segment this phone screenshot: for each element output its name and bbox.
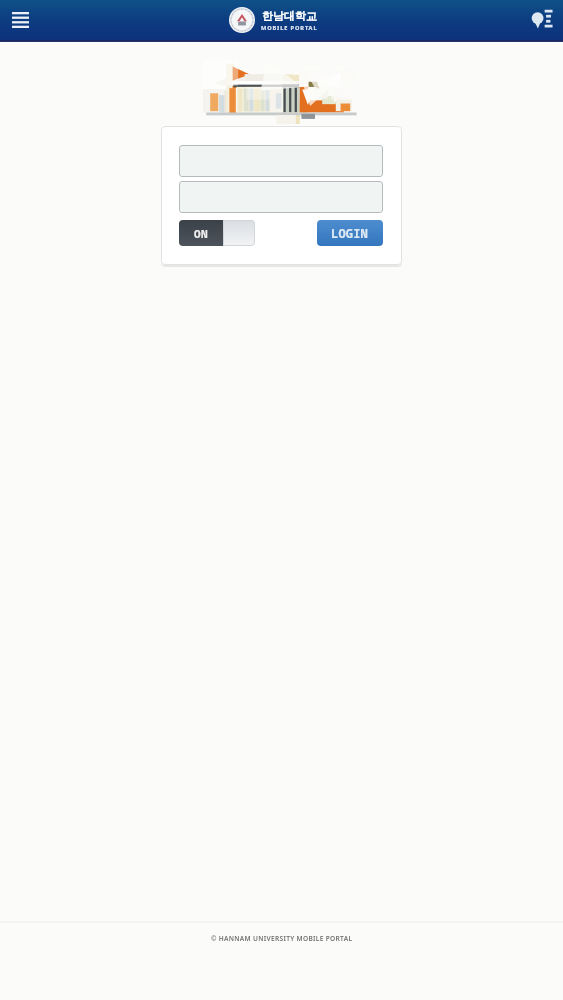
button[interactable]: Text field <box>179 181 383 213</box>
staticText: LOGIN <box>331 225 369 241</box>
staticText: MOBILE PORTAL <box>261 24 318 32</box>
button[interactable]: LOGIN <box>317 220 383 246</box>
button[interactable]: Menu <box>3 3 37 37</box>
button[interactable]: Notices <box>527 4 557 34</box>
staticText: ON <box>194 226 209 241</box>
button[interactable]: Text field <box>179 145 383 177</box>
button[interactable]: ON <box>179 220 255 246</box>
staticText: © HANNAM UNIVERSITY MOBILE PORTAL <box>211 934 353 943</box>
staticText: 한남대학교 <box>262 9 317 23</box>
